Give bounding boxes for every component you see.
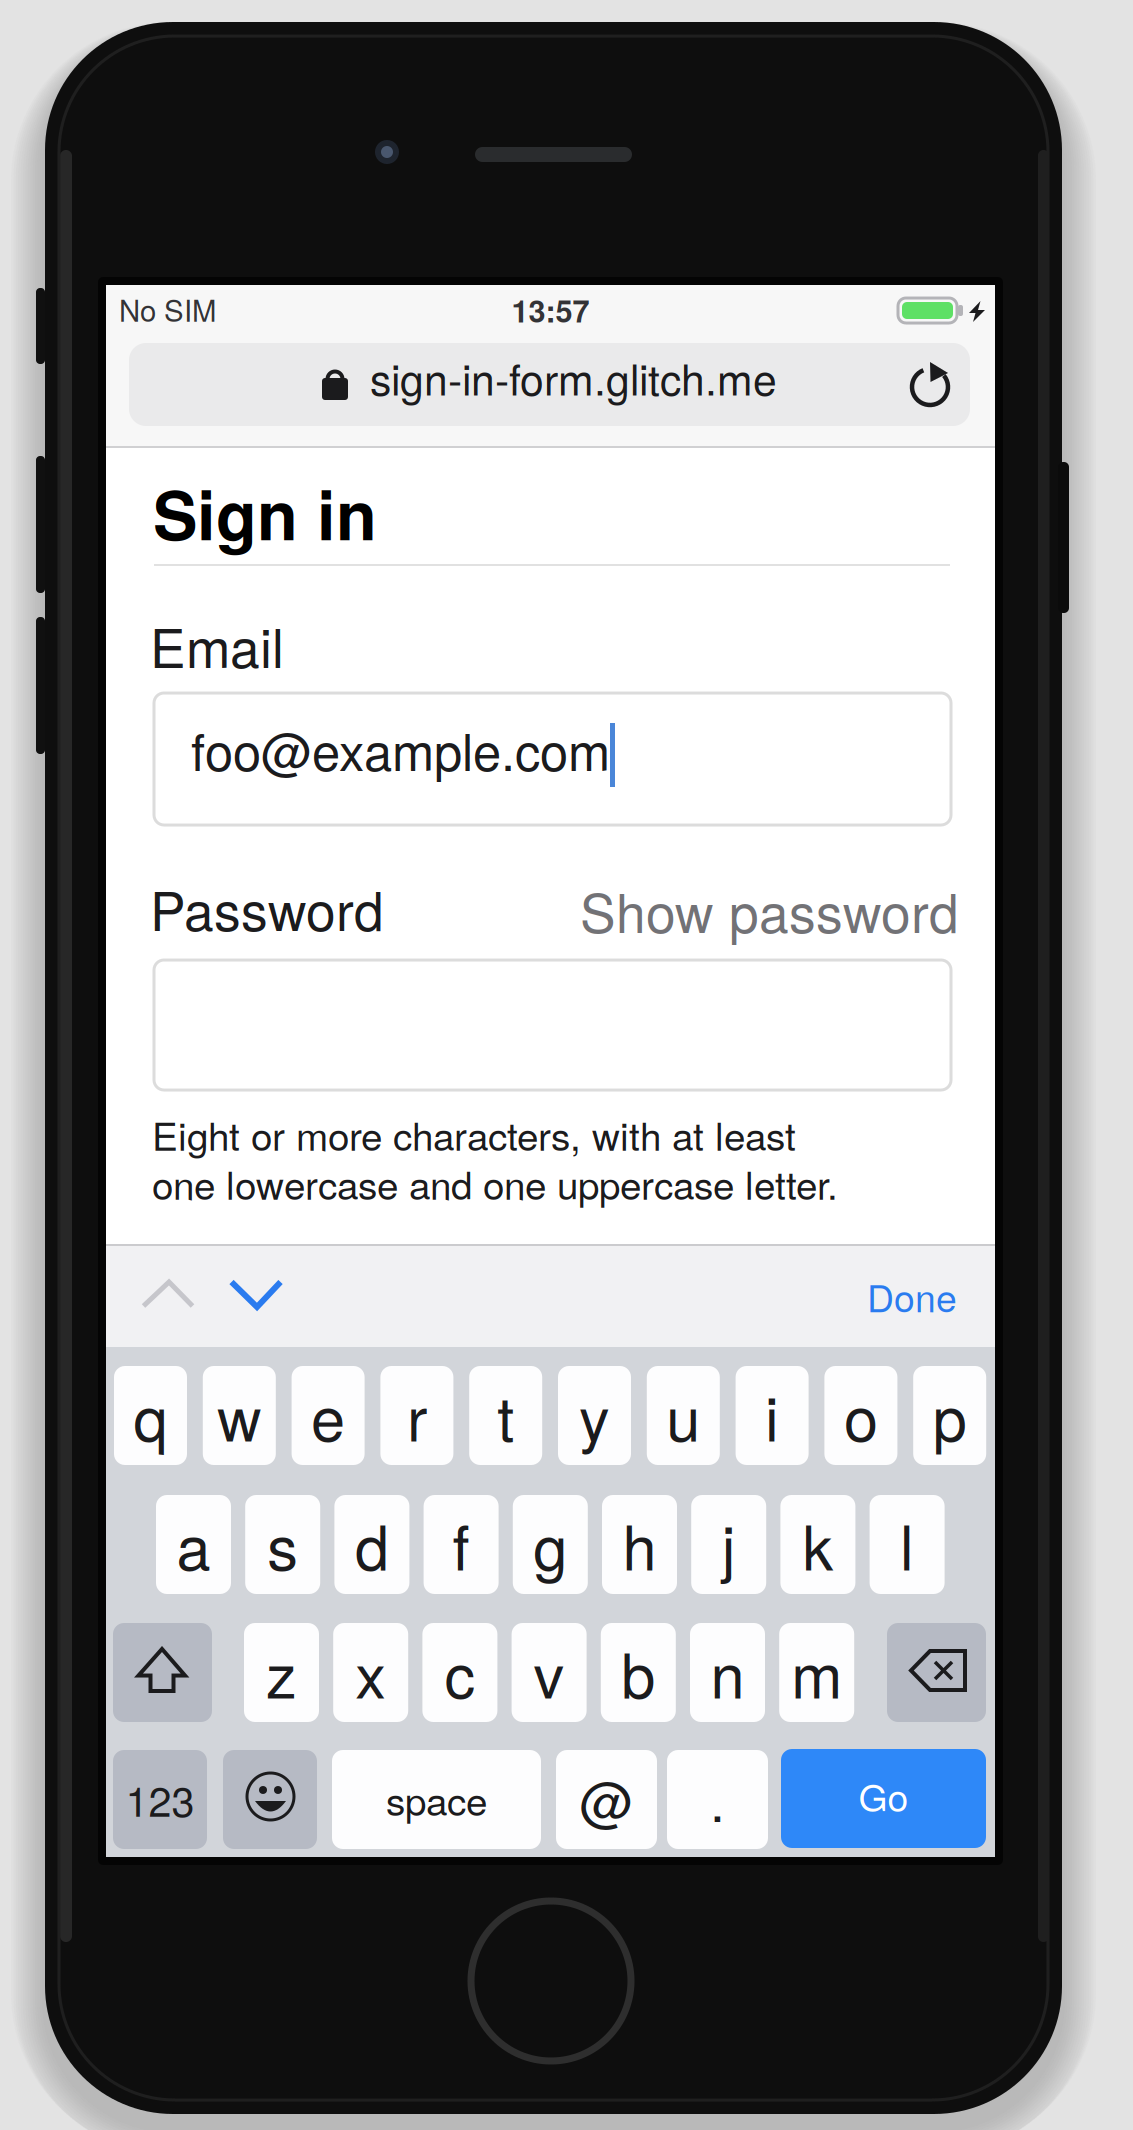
- button[interactable]: [129, 343, 970, 426]
- staticText: u: [666, 1371, 700, 1459]
- button[interactable]: j: [691, 1495, 766, 1594]
- button[interactable]: e: [292, 1366, 365, 1465]
- button[interactable]: d: [334, 1495, 409, 1594]
- button[interactable]: z: [244, 1623, 319, 1722]
- button[interactable]: r: [380, 1366, 453, 1465]
- staticText: one lowercase and one uppercase letter.: [152, 1155, 838, 1211]
- staticText: s: [267, 1500, 298, 1588]
- button[interactable]: f: [424, 1495, 499, 1594]
- button[interactable]: m: [779, 1623, 854, 1722]
- button[interactable]: g: [513, 1495, 588, 1594]
- button[interactable]: .: [667, 1750, 768, 1849]
- staticText: Eight or more characters, with at least: [152, 1106, 796, 1162]
- button[interactable]: @: [556, 1750, 657, 1849]
- button[interactable]: space: [332, 1750, 541, 1849]
- staticText: Go: [858, 1769, 908, 1822]
- staticText: .: [710, 1761, 725, 1837]
- staticText: Password: [150, 870, 384, 946]
- button[interactable]: t: [469, 1366, 542, 1465]
- staticText: foo@example.com: [191, 713, 610, 785]
- staticText: k: [802, 1500, 833, 1588]
- button[interactable]: s: [245, 1495, 320, 1594]
- button[interactable]: Delete: [887, 1623, 986, 1722]
- staticText: Done: [867, 1269, 957, 1323]
- staticText: e: [311, 1371, 345, 1459]
- staticText: space: [386, 1771, 487, 1827]
- button[interactable]: Done: [106, 1244, 995, 1347]
- button[interactable]: Reload page: [892, 349, 968, 425]
- button[interactable]: b: [601, 1623, 676, 1722]
- staticText: Sign in: [153, 465, 377, 561]
- staticText: i: [765, 1371, 779, 1459]
- button[interactable]: a: [156, 1495, 231, 1594]
- button[interactable]: u: [647, 1366, 720, 1465]
- staticText: q: [133, 1371, 167, 1459]
- staticText: h: [622, 1500, 656, 1588]
- staticText: p: [933, 1371, 967, 1459]
- staticText: @: [579, 1761, 633, 1837]
- button[interactable]: o: [824, 1366, 897, 1465]
- staticText: n: [710, 1628, 744, 1716]
- button[interactable]: Next field: [214, 1268, 298, 1352]
- button[interactable]: v: [512, 1623, 587, 1722]
- button[interactable]: n: [690, 1623, 765, 1722]
- staticText: l: [900, 1500, 914, 1588]
- staticText: j: [722, 1500, 736, 1588]
- button[interactable]: Previous field: [126, 1268, 210, 1352]
- staticText: v: [534, 1628, 565, 1716]
- button[interactable]: y: [558, 1366, 631, 1465]
- staticText: r: [407, 1371, 427, 1459]
- staticText: t: [497, 1371, 514, 1459]
- button[interactable]: Emoji: [223, 1750, 317, 1849]
- staticText: a: [176, 1500, 210, 1588]
- staticText: 13:57: [511, 288, 589, 332]
- staticText: x: [355, 1628, 386, 1716]
- button[interactable]: Shift: [113, 1623, 212, 1722]
- staticText: 123: [125, 1769, 194, 1829]
- button[interactable]: x: [333, 1623, 408, 1722]
- staticText: z: [266, 1628, 297, 1716]
- staticText: c: [444, 1628, 475, 1716]
- button[interactable]: l: [870, 1495, 945, 1594]
- button[interactable]: q: [114, 1366, 187, 1465]
- staticText: Email: [150, 607, 284, 683]
- button[interactable]: w: [203, 1366, 276, 1465]
- staticText: y: [579, 1371, 610, 1459]
- button[interactable]: 123: [113, 1750, 207, 1849]
- button[interactable]: k: [780, 1495, 855, 1594]
- staticText: sign-in-form.glitch.me: [370, 346, 777, 408]
- button[interactable]: Go: [781, 1749, 986, 1848]
- button[interactable]: c: [422, 1623, 497, 1722]
- button[interactable]: p: [913, 1366, 986, 1465]
- staticText: o: [844, 1371, 878, 1459]
- button[interactable]: Show password: [106, 448, 995, 1244]
- button[interactable]: i: [736, 1366, 809, 1465]
- staticText: g: [533, 1500, 567, 1588]
- staticText: m: [791, 1628, 842, 1716]
- staticText: w: [217, 1371, 261, 1459]
- button[interactable]: h: [602, 1495, 677, 1594]
- staticText: No SIM: [119, 288, 216, 330]
- staticText: b: [621, 1628, 655, 1716]
- staticText: Show password: [580, 872, 959, 948]
- staticText: f: [453, 1500, 470, 1588]
- staticText: d: [355, 1500, 389, 1588]
